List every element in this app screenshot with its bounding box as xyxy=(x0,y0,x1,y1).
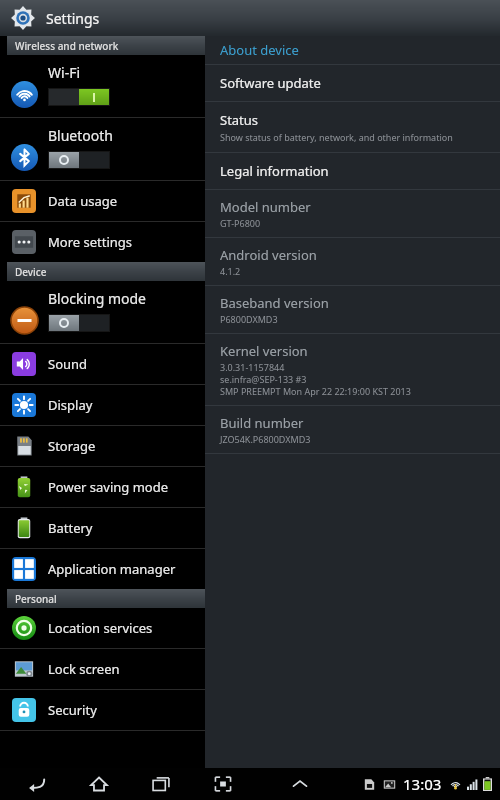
staticText: Sound xyxy=(48,355,88,373)
button[interactable]: Security xyxy=(0,690,205,730)
button[interactable]: Storage xyxy=(0,426,205,466)
button[interactable]: Blocking mode xyxy=(0,281,205,343)
staticText: Status xyxy=(220,111,259,129)
staticText: Baseband version xyxy=(220,294,329,312)
staticText: Power saving mode xyxy=(48,478,169,496)
button[interactable]: Screenshot xyxy=(208,769,238,799)
staticText: Personal xyxy=(15,592,57,606)
staticText: se.infra@SEP-133 #3 xyxy=(220,373,307,385)
staticText: Wi-Fi xyxy=(48,63,81,82)
staticText: 3.0.31-1157844 xyxy=(220,361,285,373)
staticText: GT-P6800 xyxy=(220,217,261,229)
button[interactable]: Bluetooth xyxy=(0,118,205,180)
button[interactable]: Legal information xyxy=(205,153,500,189)
button[interactable]: More settings xyxy=(0,222,205,262)
staticText: Storage xyxy=(48,437,96,455)
button[interactable]: Power saving mode xyxy=(0,467,205,507)
staticText: Security xyxy=(48,701,97,719)
staticText: Blocking mode xyxy=(48,289,146,308)
button[interactable]: Back xyxy=(22,769,52,799)
button[interactable]: Display xyxy=(0,385,205,425)
staticText: Display xyxy=(48,396,93,414)
staticText: Wireless and network xyxy=(15,39,119,53)
button[interactable]: Recents xyxy=(146,769,176,799)
staticText: Show status of battery, network, and oth… xyxy=(220,131,453,143)
button[interactable]: Wi-Fi xyxy=(0,55,205,117)
button[interactable]: Sound xyxy=(0,344,205,384)
button[interactable]: Home xyxy=(84,769,114,799)
staticText: JZO54K.P6800DXMD3 xyxy=(220,433,311,445)
staticText: Kernel version xyxy=(220,342,308,360)
button[interactable]: Application manager xyxy=(0,549,205,589)
staticText: About device xyxy=(220,41,299,59)
button[interactable]: Status xyxy=(205,102,500,152)
staticText: Device xyxy=(15,265,47,279)
staticText: Settings xyxy=(46,9,100,28)
button[interactable]: Lock screen xyxy=(0,649,205,689)
button[interactable]: Data usage xyxy=(0,181,205,221)
staticText: Build number xyxy=(220,414,304,432)
staticText: 4.1.2 xyxy=(220,265,241,277)
button[interactable]: Expand xyxy=(285,769,315,799)
staticText: Battery xyxy=(48,519,93,537)
button[interactable]: Software update xyxy=(205,65,500,101)
staticText: SMP PREEMPT Mon Apr 22 22:19:00 KST 2013 xyxy=(220,385,411,397)
staticText: P6800DXMD3 xyxy=(220,313,278,325)
staticText: Software update xyxy=(220,74,321,92)
staticText: Data usage xyxy=(48,192,118,210)
staticText: Android version xyxy=(220,246,317,264)
staticText: Legal information xyxy=(220,162,329,180)
staticText: Application manager xyxy=(48,560,176,578)
staticText: 13:03 xyxy=(403,774,442,794)
staticText: Lock screen xyxy=(48,660,120,678)
staticText: Model number xyxy=(220,198,311,216)
staticText: Location services xyxy=(48,619,153,637)
button[interactable]: Location services xyxy=(0,608,205,648)
staticText: Bluetooth xyxy=(48,126,113,145)
staticText: More settings xyxy=(48,233,133,251)
button[interactable]: Battery xyxy=(0,508,205,548)
